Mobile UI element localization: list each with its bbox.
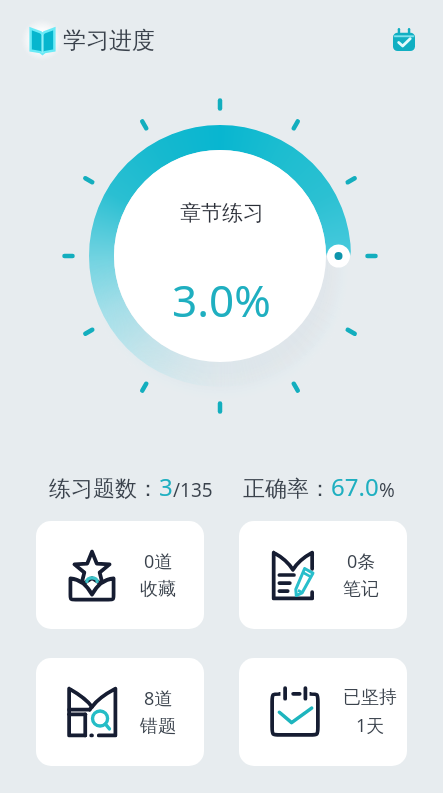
staticText: 1天 — [356, 713, 385, 738]
staticText: 0道 — [144, 549, 173, 574]
button[interactable]: 8道 — [36, 658, 204, 766]
staticText: 8道 — [144, 686, 173, 711]
staticText: % — [379, 477, 395, 503]
staticText: /135 — [173, 477, 213, 503]
staticText: 笔记 — [343, 578, 379, 601]
staticText: 0条 — [347, 549, 376, 574]
staticText: 67.0 — [331, 470, 379, 503]
staticText: 已坚持 — [343, 686, 397, 709]
staticText: 练习题数： — [49, 475, 159, 503]
button[interactable]: 0道 — [36, 521, 204, 629]
button[interactable]: 已坚持 — [239, 658, 407, 766]
staticText: 收藏 — [140, 578, 176, 601]
staticText: 章节练习 — [180, 200, 264, 226]
staticText: 3 — [159, 470, 173, 503]
button[interactable]: 0条 — [239, 521, 407, 629]
staticText: 学习进度 — [63, 26, 155, 55]
staticText: 正确率： — [243, 475, 331, 503]
button[interactable]: Calendar — [384, 20, 424, 60]
staticText: 错题 — [140, 715, 176, 738]
staticText: 3.0% — [172, 270, 271, 330]
